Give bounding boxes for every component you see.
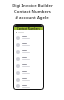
button[interactable] <box>14 34 43 41</box>
button[interactable] <box>14 83 43 89</box>
button[interactable] <box>14 69 43 76</box>
button[interactable] <box>14 62 43 69</box>
button[interactable] <box>14 55 43 62</box>
button[interactable]: Contact Numbers <box>14 27 43 30</box>
staticText: Contact Numbers <box>17 27 40 30</box>
button[interactable] <box>14 41 43 48</box>
button[interactable] <box>14 48 43 55</box>
staticText: Digi Invoice Builder <box>12 3 53 9</box>
button[interactable] <box>14 76 43 83</box>
staticText: # account Agele <box>15 15 49 21</box>
staticText: Contact Numbers <box>14 9 51 15</box>
